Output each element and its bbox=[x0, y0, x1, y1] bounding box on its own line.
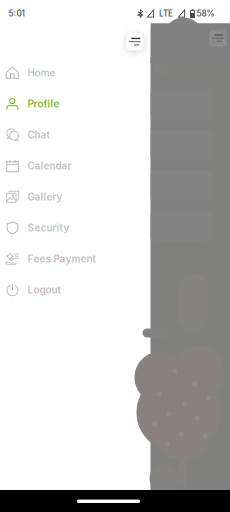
staticText: Gallery bbox=[27, 191, 62, 203]
button[interactable]: Calendar bbox=[0, 150, 150, 181]
staticText: 5:01 bbox=[8, 8, 24, 18]
button[interactable]: Logout bbox=[0, 274, 150, 305]
staticText: Home bbox=[27, 67, 55, 79]
staticText: Security bbox=[27, 222, 69, 234]
staticText: Chat bbox=[27, 129, 50, 141]
button[interactable]: Home bbox=[0, 57, 150, 88]
staticText: Logout bbox=[27, 284, 61, 296]
button[interactable]: Fees Payment bbox=[0, 243, 150, 274]
staticText: Fees Payment bbox=[27, 253, 96, 265]
staticText: Calendar bbox=[27, 160, 71, 172]
button[interactable]: Chat bbox=[0, 119, 150, 150]
button[interactable]: Profile bbox=[0, 88, 150, 119]
button[interactable]: Close menu bbox=[126, 33, 143, 50]
staticText: Profile bbox=[27, 98, 59, 110]
button[interactable]: Menu bbox=[209, 29, 226, 47]
button[interactable]: Gallery bbox=[0, 181, 150, 212]
staticText: LTE bbox=[159, 8, 173, 18]
staticText: 58% bbox=[196, 8, 214, 18]
button[interactable]: Security bbox=[0, 212, 150, 243]
